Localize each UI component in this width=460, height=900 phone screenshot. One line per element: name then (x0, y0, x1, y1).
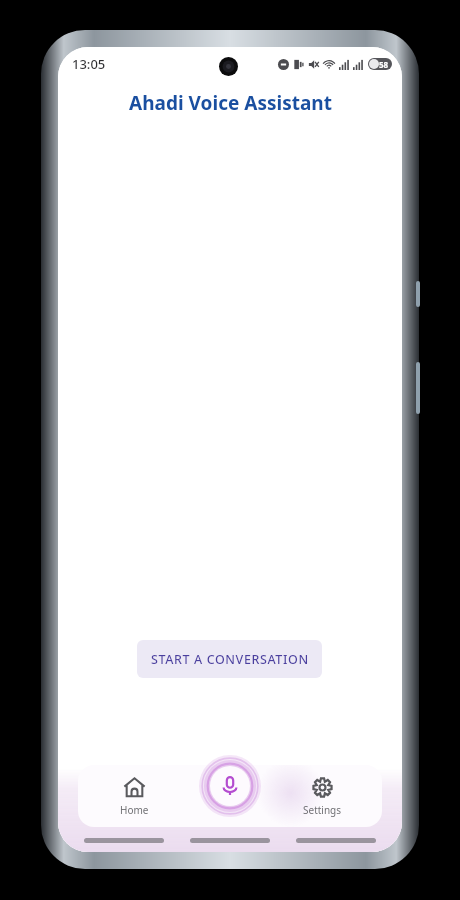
staticText: Home (120, 803, 149, 817)
staticText: 58 (379, 59, 389, 70)
staticText: 13:05 (72, 55, 106, 73)
staticText: Ahadi Voice Assistant (129, 90, 332, 116)
staticText: START A CONVERSATION (151, 651, 309, 668)
button[interactable]: Start voice input (199, 755, 261, 817)
staticText: Settings (303, 803, 342, 817)
button[interactable]: Settings (293, 772, 352, 821)
button[interactable]: START A CONVERSATION (137, 640, 322, 678)
button[interactable]: Home (110, 772, 159, 821)
